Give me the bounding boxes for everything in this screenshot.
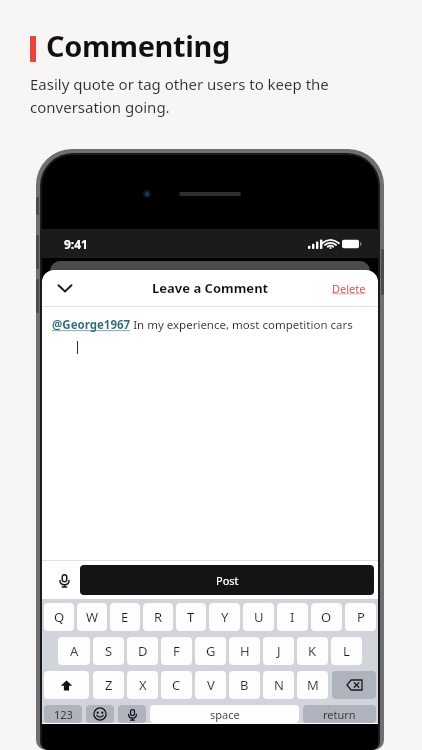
staticText: X bbox=[139, 676, 147, 694]
staticText: Easily quote or tag other users to keep … bbox=[30, 74, 329, 117]
button[interactable]: Delete bbox=[328, 277, 370, 300]
staticText: N bbox=[274, 676, 284, 694]
button[interactable]: Q bbox=[44, 603, 74, 631]
button[interactable]: U bbox=[243, 603, 274, 631]
button[interactable]: @George1967 In my experience, most compe… bbox=[42, 307, 378, 560]
staticText: 9:41 bbox=[64, 236, 88, 252]
staticText: space bbox=[210, 707, 240, 722]
staticText: Post bbox=[216, 573, 239, 588]
button[interactable]: A bbox=[58, 637, 90, 665]
staticText: C bbox=[172, 676, 181, 694]
button[interactable]: P bbox=[345, 603, 376, 631]
staticText: P bbox=[357, 608, 365, 626]
button[interactable]: S bbox=[93, 637, 124, 665]
button[interactable]: V bbox=[195, 671, 226, 699]
button[interactable]: F bbox=[161, 637, 192, 665]
button[interactable]: Post bbox=[80, 565, 374, 595]
button[interactable]: Z bbox=[93, 671, 124, 699]
staticText: Z bbox=[105, 676, 113, 694]
staticText: Q bbox=[54, 608, 65, 626]
button[interactable]: L bbox=[331, 637, 362, 665]
button[interactable]: J bbox=[263, 637, 294, 665]
staticText: @George1967 In my experience, most compe… bbox=[52, 317, 353, 333]
button[interactable]: H bbox=[229, 637, 260, 665]
button[interactable]: O bbox=[311, 603, 342, 631]
staticText: D bbox=[138, 642, 148, 660]
staticText: Leave a Comment bbox=[152, 279, 269, 297]
button[interactable]: Dictate bbox=[118, 705, 146, 723]
button[interactable]: return bbox=[303, 705, 376, 723]
button[interactable]: G bbox=[195, 637, 226, 665]
staticText: return bbox=[323, 707, 356, 722]
button[interactable]: T bbox=[176, 603, 206, 631]
button[interactable]: R bbox=[143, 603, 173, 631]
button[interactable]: B bbox=[229, 671, 260, 699]
button[interactable]: D bbox=[127, 637, 158, 665]
button[interactable]: C bbox=[161, 671, 192, 699]
staticText: 123 bbox=[54, 707, 73, 722]
staticText: V bbox=[207, 676, 215, 694]
button[interactable]: E bbox=[110, 603, 140, 631]
button[interactable]: I bbox=[277, 603, 308, 631]
button[interactable]: Voice input bbox=[48, 564, 80, 596]
staticText: Delete bbox=[332, 281, 366, 296]
staticText: M bbox=[307, 676, 319, 694]
staticText: T bbox=[187, 608, 195, 626]
staticText: R bbox=[154, 608, 163, 626]
button[interactable]: N bbox=[263, 671, 294, 699]
button[interactable]: W bbox=[77, 603, 107, 631]
staticText: K bbox=[308, 642, 317, 660]
button[interactable]: Collapse bbox=[48, 271, 82, 305]
staticText: U bbox=[254, 608, 264, 626]
button[interactable]: Y bbox=[209, 603, 240, 631]
button[interactable]: Shift bbox=[44, 671, 89, 699]
staticText: S bbox=[105, 642, 113, 660]
staticText: Commenting bbox=[46, 26, 230, 65]
button[interactable]: space bbox=[150, 705, 299, 723]
staticText: J bbox=[277, 642, 281, 660]
staticText: H bbox=[240, 642, 250, 660]
staticText: B bbox=[240, 676, 249, 694]
staticText: A bbox=[70, 642, 79, 660]
button[interactable]: Backspace bbox=[332, 671, 376, 699]
staticText: E bbox=[121, 608, 129, 626]
staticText: W bbox=[86, 608, 99, 626]
staticText: L bbox=[343, 642, 350, 660]
button[interactable]: 123 bbox=[44, 705, 82, 723]
staticText: G bbox=[206, 642, 216, 660]
button[interactable]: Emoji bbox=[86, 705, 114, 723]
staticText: Y bbox=[221, 608, 229, 626]
staticText: I bbox=[290, 608, 295, 626]
staticText: O bbox=[321, 608, 332, 626]
button[interactable]: K bbox=[297, 637, 328, 665]
button[interactable]: M bbox=[297, 671, 328, 699]
staticText: F bbox=[173, 642, 180, 660]
button[interactable]: X bbox=[127, 671, 158, 699]
